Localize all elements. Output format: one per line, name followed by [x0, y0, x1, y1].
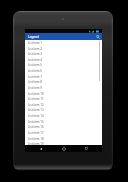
- staticText: List item 3: [28, 52, 42, 56]
- button[interactable]: List item 2: [25, 46, 102, 52]
- staticText: List item 16: [28, 125, 44, 129]
- staticText: List item 7: [28, 75, 42, 79]
- staticText: List item 14: [28, 114, 44, 118]
- button[interactable]: List item 18: [25, 136, 102, 142]
- staticText: List item 4: [28, 58, 42, 62]
- button[interactable]: List item 3: [25, 51, 102, 57]
- button[interactable]: Back: [34, 145, 48, 152]
- staticText: List item 13: [28, 108, 44, 112]
- button[interactable]: List item 13: [25, 107, 102, 113]
- staticText: List item 11: [28, 97, 44, 101]
- button[interactable]: List item 19: [25, 141, 102, 147]
- staticText: List item 6: [28, 69, 42, 73]
- staticText: List item 2: [28, 47, 42, 51]
- staticText: List item 1: [28, 41, 42, 45]
- staticText: Legend: [28, 35, 40, 39]
- button[interactable]: Home: [57, 145, 71, 152]
- staticText: List item 8: [28, 80, 42, 84]
- staticText: List item 15: [28, 120, 44, 124]
- button[interactable]: List item 6: [25, 68, 102, 74]
- button[interactable]: List item 7: [25, 74, 102, 80]
- button[interactable]: List item 17: [25, 130, 102, 136]
- staticText: List item 17: [28, 131, 44, 135]
- button[interactable]: List item 12: [25, 102, 102, 108]
- button[interactable]: List item 1: [25, 40, 102, 46]
- button[interactable]: List item 15: [25, 119, 102, 125]
- button[interactable]: List item 4: [25, 57, 102, 63]
- staticText: List item 12: [28, 103, 44, 107]
- staticText: List item 9: [28, 86, 42, 90]
- button[interactable]: List item 14: [25, 113, 102, 119]
- staticText: List item 10: [28, 92, 44, 96]
- button[interactable]: List item 10: [25, 91, 102, 97]
- button[interactable]: List item 8: [25, 79, 102, 85]
- button[interactable]: List item 16: [25, 124, 102, 130]
- button[interactable]: List item 11: [25, 96, 102, 102]
- button[interactable]: Search: [94, 33, 101, 40]
- button[interactable]: Recent apps: [79, 145, 93, 152]
- staticText: List item 5: [28, 63, 42, 67]
- button[interactable]: List item 5: [25, 62, 102, 68]
- staticText: List item 19: [28, 142, 44, 146]
- staticText: List item 18: [28, 137, 44, 141]
- button[interactable]: List item 9: [25, 85, 102, 91]
